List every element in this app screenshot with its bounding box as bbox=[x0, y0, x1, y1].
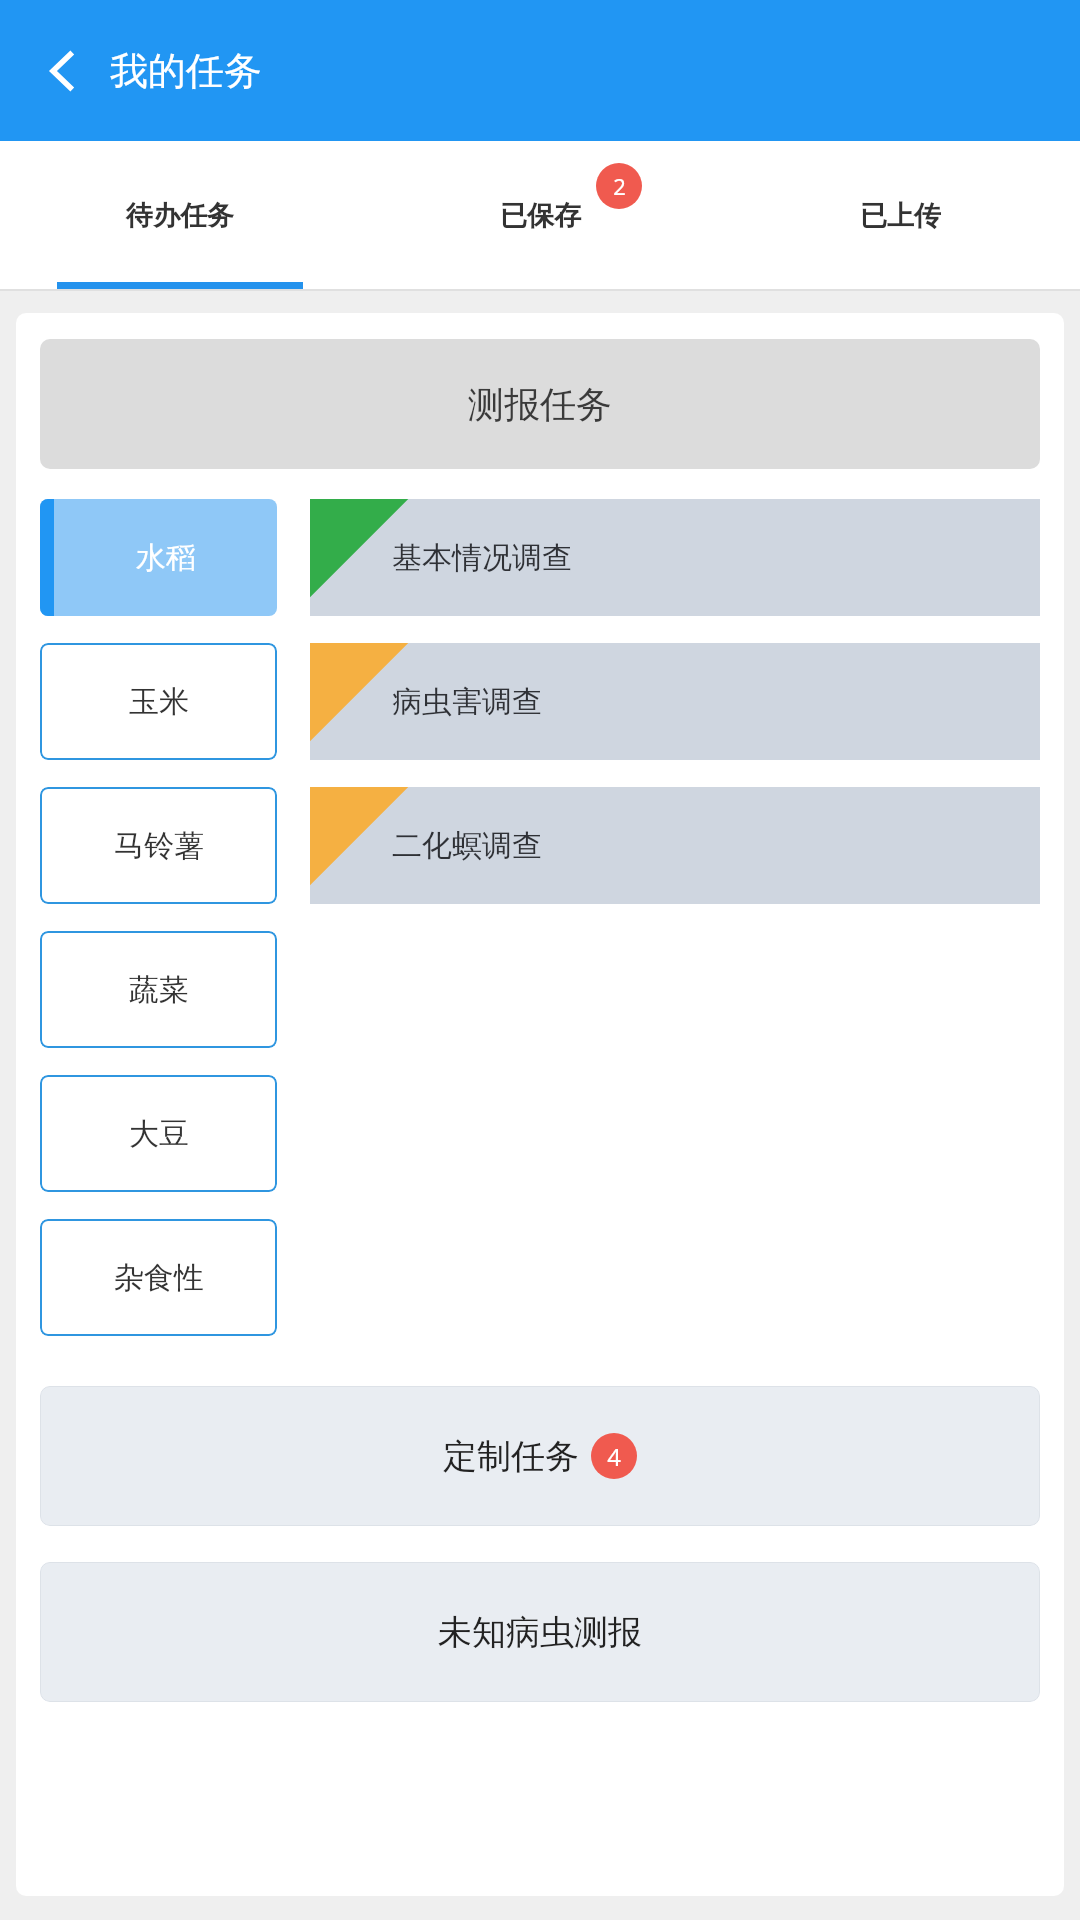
button[interactable]: 杂食性 bbox=[40, 1219, 277, 1336]
staticText: 水稻 bbox=[136, 539, 196, 577]
staticText: 玉米 bbox=[129, 683, 189, 721]
button[interactable]: Back bbox=[26, 33, 102, 109]
button[interactable]: 已保存 bbox=[360, 141, 720, 291]
staticText: 4 bbox=[607, 1440, 621, 1473]
staticText: 基本情况调查 bbox=[392, 539, 572, 577]
button[interactable]: 定制任务 bbox=[40, 1386, 1040, 1526]
button[interactable]: 蔬菜 bbox=[40, 931, 277, 1048]
staticText: 测报任务 bbox=[468, 382, 612, 427]
staticText: 已保存 bbox=[500, 199, 581, 233]
staticText: 待办任务 bbox=[126, 199, 234, 233]
staticText: 未知病虫测报 bbox=[438, 1611, 642, 1654]
staticText: 已上传 bbox=[860, 199, 941, 233]
button[interactable]: 水稻 bbox=[40, 499, 277, 616]
staticText: 马铃薯 bbox=[114, 827, 204, 865]
staticText: 杂食性 bbox=[114, 1259, 204, 1297]
staticText: 定制任务 bbox=[443, 1435, 579, 1478]
button[interactable]: 基本情况调查 bbox=[310, 499, 1040, 616]
staticText: 大豆 bbox=[129, 1115, 189, 1153]
button[interactable]: 大豆 bbox=[40, 1075, 277, 1192]
button[interactable]: 玉米 bbox=[40, 643, 277, 760]
staticText: 2 bbox=[613, 171, 626, 201]
button[interactable]: 待办任务 bbox=[0, 141, 360, 291]
button[interactable]: 已上传 bbox=[720, 141, 1080, 291]
button[interactable]: 马铃薯 bbox=[40, 787, 277, 904]
staticText: 我的任务 bbox=[110, 47, 262, 95]
staticText: 二化螟调查 bbox=[392, 827, 542, 865]
staticText: 病虫害调查 bbox=[392, 683, 542, 721]
button[interactable]: 病虫害调查 bbox=[310, 643, 1040, 760]
staticText: 蔬菜 bbox=[129, 971, 189, 1009]
button[interactable]: 未知病虫测报 bbox=[40, 1562, 1040, 1702]
button[interactable]: 二化螟调查 bbox=[310, 787, 1040, 904]
